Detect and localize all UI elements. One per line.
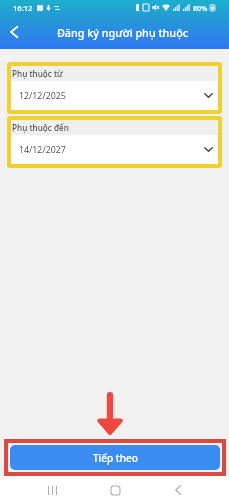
button[interactable]: Back xyxy=(158,476,198,504)
button[interactable]: Home xyxy=(95,476,135,504)
staticText: 14/12/2027 xyxy=(19,144,66,156)
staticText: 12/12/2025 xyxy=(19,90,66,102)
button[interactable]: Recent apps xyxy=(32,476,72,504)
staticText: 80% xyxy=(193,3,208,13)
button[interactable]: Tiếp theo xyxy=(10,445,220,470)
button[interactable]: Phụ thuộc đến xyxy=(11,120,218,164)
button[interactable]: Back xyxy=(0,15,28,49)
button[interactable]: Phụ thuộc từ xyxy=(11,66,218,110)
staticText: Tiếp theo xyxy=(93,451,138,465)
staticText: Phụ thuộc từ xyxy=(12,68,63,79)
staticText: 16:12 xyxy=(13,3,33,13)
staticText: Phụ thuộc đến xyxy=(12,122,69,133)
staticText: Đăng ký người phụ thuộc xyxy=(22,25,223,40)
